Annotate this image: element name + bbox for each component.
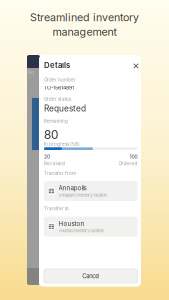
staticText: 100 <box>129 153 137 160</box>
staticText: 80 <box>44 128 58 142</box>
staticText: Annapolis inventory location <box>59 193 107 198</box>
button[interactable]: Close <box>130 60 141 71</box>
staticText: management <box>52 25 116 38</box>
staticText: Streamlined inventory <box>30 11 139 24</box>
staticText: Received <box>44 161 65 166</box>
button[interactable]: Cancel <box>44 269 137 283</box>
staticText: Annapolis <box>59 184 87 192</box>
staticText: Order number <box>44 77 76 82</box>
staticText: In progress (58) <box>44 141 80 147</box>
staticText: Transfer to <box>44 206 69 211</box>
staticText: Details <box>44 60 70 70</box>
staticText: Ordered <box>118 161 137 166</box>
staticText: Transfer from <box>44 171 76 176</box>
staticText: 20 <box>44 153 50 160</box>
button[interactable]: Annapolis <box>44 181 137 201</box>
button[interactable]: Houston <box>44 217 137 237</box>
staticText: Houston <box>59 220 85 227</box>
staticText: Remaining <box>44 118 68 124</box>
staticText: Ro <box>28 69 34 75</box>
staticText: Requested <box>44 103 86 113</box>
staticText: TO-15614891 <box>44 84 74 91</box>
staticText: Order status <box>44 96 71 102</box>
staticText: Cancel <box>82 272 99 280</box>
staticText: Houston inventory location <box>59 228 104 233</box>
